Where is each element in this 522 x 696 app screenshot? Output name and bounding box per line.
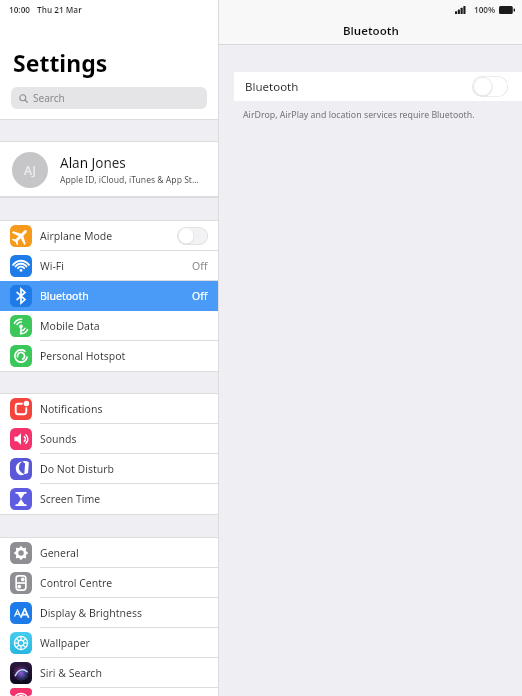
staticText: Siri & Search <box>40 666 208 680</box>
staticText: Mobile Data <box>40 319 208 333</box>
button[interactable]: Siri & Search <box>0 658 218 688</box>
staticText: Alan Jones <box>60 154 126 172</box>
staticText: Personal Hotspot <box>40 349 208 363</box>
staticText: General <box>40 546 208 560</box>
staticText: Off <box>192 289 208 303</box>
staticText: Settings <box>13 47 108 78</box>
button[interactable]: Airplane Mode toggle <box>177 227 208 245</box>
staticText: Off <box>192 259 208 273</box>
button[interactable]: Wi-Fi <box>0 251 218 281</box>
staticText: Display & Brightness <box>40 606 208 620</box>
staticText: Screen Time <box>40 492 208 506</box>
button[interactable]: Bluetooth toggle <box>472 76 508 97</box>
button[interactable]: Do Not Disturb <box>0 454 218 484</box>
staticText: 100% <box>474 4 496 15</box>
button[interactable]: General <box>0 538 218 568</box>
staticText: Control Centre <box>40 576 208 590</box>
button[interactable]: Mobile Data <box>0 311 218 341</box>
staticText: Sounds <box>40 432 208 446</box>
staticText: Bluetooth <box>245 79 472 95</box>
button[interactable]: Bluetooth <box>0 281 218 311</box>
button[interactable]: Search <box>11 87 207 109</box>
staticText: Apple ID, iCloud, iTunes & App St… <box>60 174 199 186</box>
button[interactable]: Notifications <box>0 394 218 424</box>
button[interactable]: Bluetooth <box>234 72 522 101</box>
staticText: Notifications <box>40 402 208 416</box>
button[interactable] <box>0 688 218 696</box>
staticText: Do Not Disturb <box>40 462 208 476</box>
staticText: 10:00 <box>9 4 30 15</box>
button[interactable]: Control Centre <box>0 568 218 598</box>
staticText: Bluetooth <box>40 289 192 303</box>
staticText: Thu 21 Mar <box>37 4 82 15</box>
button[interactable]: Display & Brightness <box>0 598 218 628</box>
button[interactable]: Screen Time <box>0 484 218 514</box>
button[interactable]: Wallpaper <box>0 628 218 658</box>
staticText: Airplane Mode <box>40 229 177 243</box>
staticText: Wallpaper <box>40 636 208 650</box>
staticText: AirDrop, AirPlay and location services r… <box>243 109 475 121</box>
button[interactable]: Airplane Mode <box>0 221 218 251</box>
staticText: Bluetooth <box>343 23 399 39</box>
staticText: Search <box>33 91 65 105</box>
button[interactable]: Personal Hotspot <box>0 341 218 371</box>
button[interactable]: Sounds <box>0 424 218 454</box>
staticText: Wi-Fi <box>40 259 192 273</box>
staticText: AJ <box>24 162 37 179</box>
button[interactable]: AJ <box>0 142 218 197</box>
